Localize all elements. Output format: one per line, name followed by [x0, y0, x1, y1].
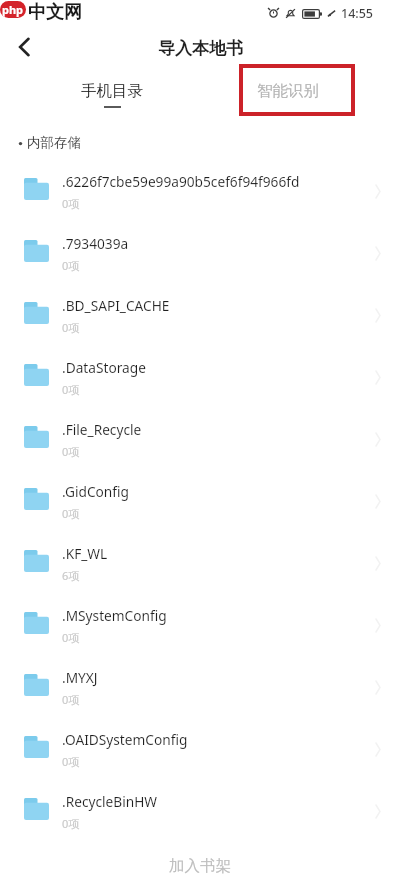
- staticText: 0项: [62, 444, 80, 459]
- button[interactable]: 加入书架: [0, 840, 400, 888]
- staticText: .File_Recycle: [62, 420, 142, 439]
- staticText: 0项: [62, 320, 80, 335]
- staticText: .BD_SAPI_CACHE: [62, 296, 170, 315]
- button[interactable]: .RecycleBinHW: [0, 775, 400, 837]
- staticText: 0项: [62, 630, 80, 645]
- staticText: .GidConfig: [62, 482, 129, 501]
- staticText: 0项: [62, 196, 80, 211]
- button[interactable]: .DataStorage: [0, 341, 400, 403]
- button[interactable]: .6226f7cbe59e99a90b5cef6f94f966fd: [0, 155, 400, 217]
- button[interactable]: .File_Recycle: [0, 403, 400, 465]
- staticText: .OAIDSystemConfig: [62, 730, 188, 749]
- staticText: 手机目录: [81, 81, 143, 101]
- staticText: 智能识别: [257, 81, 319, 101]
- button[interactable]: .OAIDSystemConfig: [0, 713, 400, 775]
- button[interactable]: .MSystemConfig: [0, 589, 400, 651]
- staticText: .DataStorage: [62, 358, 146, 377]
- button[interactable]: .KF_WL: [0, 527, 400, 589]
- staticText: .MSystemConfig: [62, 606, 167, 625]
- button[interactable]: .MYXJ: [0, 651, 400, 713]
- button[interactable]: 手机目录: [62, 68, 162, 120]
- staticText: .KF_WL: [62, 544, 108, 563]
- staticText: .MYXJ: [62, 668, 98, 687]
- staticText: 导入本地书: [158, 38, 243, 59]
- staticText: 0项: [62, 692, 80, 707]
- staticText: 6项: [62, 568, 80, 583]
- staticText: 加入书架: [169, 856, 231, 876]
- staticText: .7934039a: [62, 234, 129, 253]
- button[interactable]: .GidConfig: [0, 465, 400, 527]
- staticText: 0项: [62, 754, 80, 769]
- staticText: .RecycleBinHW: [62, 792, 158, 811]
- staticText: 0项: [62, 382, 80, 397]
- button[interactable]: .BD_SAPI_CACHE: [0, 279, 400, 341]
- button[interactable]: .7934039a: [0, 217, 400, 279]
- staticText: 中文网: [28, 1, 82, 24]
- staticText: php: [2, 2, 24, 17]
- staticText: 0项: [62, 506, 80, 521]
- button[interactable]: 智能识别: [238, 68, 338, 120]
- staticText: 14:55: [341, 5, 374, 22]
- staticText: 0项: [62, 816, 80, 831]
- staticText: 0项: [62, 258, 80, 273]
- staticText: 内部存储: [27, 134, 81, 151]
- button[interactable]: 返回: [6, 28, 44, 66]
- staticText: .6226f7cbe59e99a90b5cef6f94f966fd: [62, 172, 300, 191]
